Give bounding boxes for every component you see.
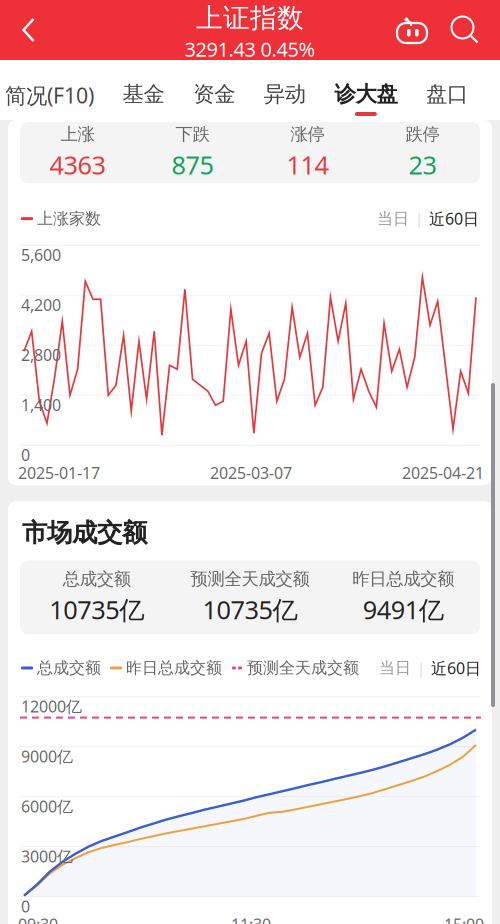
staticText: 诊大盘 [334,81,397,107]
staticText: 6000亿 [21,796,73,817]
staticText: 简况(F10) [5,81,94,109]
staticText: 总成交额 [63,568,131,590]
staticText: 总成交额 [37,658,101,678]
staticText: 114 [286,148,328,181]
staticText: 近60日 [431,657,481,679]
staticText: 2,800 [21,344,61,365]
staticText: 9000亿 [21,746,73,767]
staticText: | [415,209,423,228]
staticText: 上证指数 [196,2,304,35]
staticText: 昨日总成交额 [126,658,222,678]
staticText: 基金 [123,81,165,107]
staticText: 2025-03-07 [210,462,292,483]
staticText: 4363 [49,148,105,181]
staticText: 市场成交额 [22,517,147,548]
staticText: 875 [171,148,213,181]
button[interactable]: 当日 [377,209,409,228]
staticText: 10735亿 [49,593,144,626]
button[interactable]: Back [0,0,51,60]
staticText: 15:00 [444,914,484,924]
staticText: 涨停 [290,123,324,145]
staticText: 3291.43 0.45% [184,36,315,62]
button[interactable]: 资金 [193,60,235,120]
staticText: 2025-01-17 [18,462,100,483]
button[interactable]: 当日 [379,658,411,678]
staticText: 0 [21,444,30,465]
button[interactable]: 基金 [123,60,165,120]
staticText: 11:30 [231,914,271,924]
button[interactable]: Search [444,0,486,60]
button[interactable]: 近60日 [429,208,479,229]
staticText: 12000亿 [21,696,82,717]
staticText: 昨日总成交额 [352,568,454,590]
staticText: 异动 [264,81,306,107]
staticText: 23 [408,148,436,181]
button[interactable]: AI assistant [388,0,436,60]
staticText: 上涨 [60,123,94,145]
staticText: 当日 [379,658,411,678]
staticText: 下跌 [175,123,209,145]
staticText: 5,600 [21,244,61,265]
button[interactable]: 近60日 [431,657,481,679]
staticText: 3000亿 [21,846,73,867]
staticText: 资金 [193,81,235,107]
staticText: 当日 [377,209,409,228]
staticText: 盘口 [426,81,468,107]
staticText: | [417,658,425,678]
button[interactable]: 异动 [264,60,306,120]
staticText: 跌停 [405,123,439,145]
staticText: 预测全天成交额 [247,658,359,678]
staticText: 1,400 [21,394,61,415]
staticText: 预测全天成交额 [190,568,309,590]
staticText: 上涨家数 [37,209,101,228]
button[interactable]: 诊大盘 [334,60,397,120]
staticText: 4,200 [21,294,61,315]
staticText: 9491亿 [363,593,444,626]
staticText: 近60日 [429,208,479,229]
staticText: 2025-04-21 [402,462,484,483]
staticText: 09:30 [18,914,58,924]
button[interactable]: 简况(F10) [5,60,94,120]
button[interactable]: 盘口 [426,60,468,120]
staticText: 10735亿 [202,593,297,626]
staticText: 0 [21,896,30,917]
